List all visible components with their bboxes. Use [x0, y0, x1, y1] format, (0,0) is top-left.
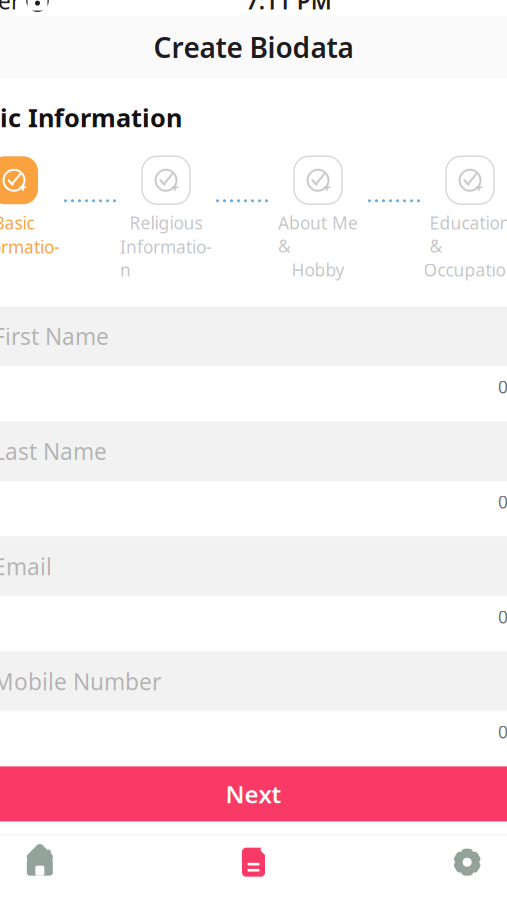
staticText: Information — [120, 235, 212, 281]
staticText: Basic — [0, 211, 34, 234]
staticText: 0/50 — [498, 605, 507, 628]
button[interactable]: Next — [0, 766, 507, 821]
staticText: Last Name — [0, 436, 107, 466]
staticText: 0/50 — [498, 375, 507, 398]
button[interactable]: Last Name — [0, 421, 507, 481]
staticText: Occupation — [423, 258, 507, 281]
button[interactable]: First Name — [0, 306, 507, 366]
button[interactable]: Settings — [360, 835, 507, 889]
staticText: 7:11 PM — [246, 0, 332, 16]
staticText: Information — [0, 235, 60, 281]
staticText: Basic Information — [0, 101, 182, 134]
staticText: Hobby — [291, 258, 344, 281]
staticText: 0/50 — [498, 490, 507, 513]
staticText: About Me & — [278, 211, 358, 257]
button[interactable]: Home — [0, 835, 147, 889]
button[interactable]: About Me & — [270, 156, 366, 281]
button[interactable]: Mobile Number — [0, 651, 507, 711]
button[interactable]: Education & — [422, 156, 507, 281]
staticText: Next — [225, 778, 281, 810]
staticText: Email — [0, 551, 52, 581]
staticText: First Name — [0, 321, 109, 351]
button[interactable]: Religious — [118, 156, 214, 281]
staticText: 0/15 — [498, 720, 507, 743]
button[interactable]: Basic — [0, 156, 62, 281]
staticText: Carrier — [0, 0, 20, 16]
staticText: Education & — [429, 211, 507, 257]
button[interactable]: Email — [0, 536, 507, 596]
staticText: Religious — [129, 211, 202, 234]
staticText: Create Biodata — [153, 28, 353, 66]
staticText: Mobile Number — [0, 666, 161, 696]
button[interactable]: Biodata — [147, 835, 360, 889]
